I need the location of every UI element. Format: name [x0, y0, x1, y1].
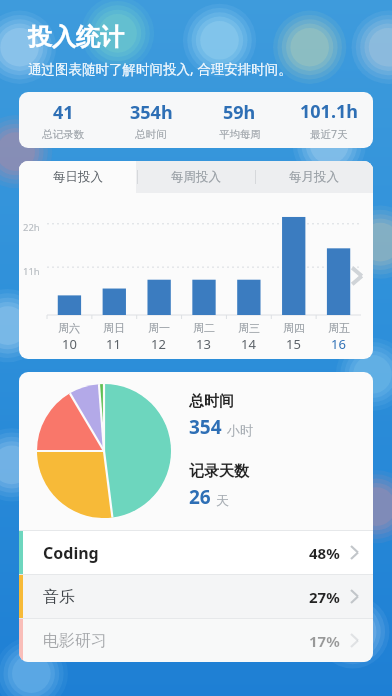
- staticText: 11: [106, 335, 121, 353]
- staticText: 周六: [58, 321, 80, 335]
- staticText: 电影研习: [43, 631, 309, 651]
- staticText: Coding: [43, 542, 309, 564]
- other: Open 电影研习: [350, 633, 359, 648]
- staticText: 每周投入: [171, 169, 221, 185]
- button[interactable]: 每周投入: [137, 161, 255, 193]
- staticText: 周二: [193, 321, 215, 335]
- staticText: 平均每周: [219, 128, 261, 141]
- staticText: 总时间: [135, 128, 167, 141]
- staticText: 周四: [283, 321, 305, 335]
- staticText: 记录天数: [189, 462, 249, 481]
- staticText: 最近7天: [310, 127, 348, 141]
- staticText: 16: [331, 335, 346, 353]
- staticText: 17%: [309, 631, 340, 651]
- button[interactable]: Coding: [19, 531, 373, 574]
- staticText: 周日: [103, 321, 125, 335]
- button[interactable]: 每日投入: [19, 161, 136, 193]
- staticText: 每月投入: [289, 169, 339, 185]
- staticText: 11h: [23, 265, 40, 278]
- staticText: 15: [286, 335, 301, 353]
- staticText: 101.1h: [300, 99, 358, 124]
- button[interactable]: 音乐: [19, 575, 373, 618]
- button[interactable]: 每月投入: [255, 161, 373, 193]
- staticText: 总时间: [189, 392, 234, 411]
- staticText: 周五: [328, 321, 350, 335]
- staticText: 10: [62, 335, 77, 353]
- staticText: 通过图表随时了解时间投入, 合理安排时间。: [28, 60, 292, 78]
- staticText: 59h: [223, 100, 256, 125]
- staticText: 13: [196, 335, 211, 353]
- staticText: 48%: [309, 543, 340, 563]
- staticText: 354h: [130, 100, 173, 125]
- staticText: 小时: [227, 422, 253, 438]
- staticText: 天: [216, 492, 229, 508]
- staticText: 354: [189, 414, 222, 440]
- staticText: 周一: [148, 321, 170, 335]
- staticText: 总记录数: [42, 128, 84, 141]
- staticText: 26: [189, 484, 211, 510]
- staticText: 14: [241, 335, 256, 353]
- other: Open Coding: [350, 545, 359, 560]
- staticText: 27%: [309, 587, 340, 607]
- button[interactable]: 电影研习: [19, 619, 373, 662]
- other: Open 音乐: [350, 589, 359, 604]
- staticText: 周三: [238, 321, 260, 335]
- staticText: 22h: [23, 221, 40, 234]
- button[interactable]: 41: [19, 92, 373, 148]
- staticText: 12: [151, 335, 166, 353]
- staticText: 每日投入: [53, 169, 103, 185]
- staticText: 音乐: [43, 587, 309, 607]
- staticText: 投入统计: [28, 22, 124, 52]
- staticText: 41: [53, 100, 74, 125]
- other: Next: [349, 263, 365, 289]
